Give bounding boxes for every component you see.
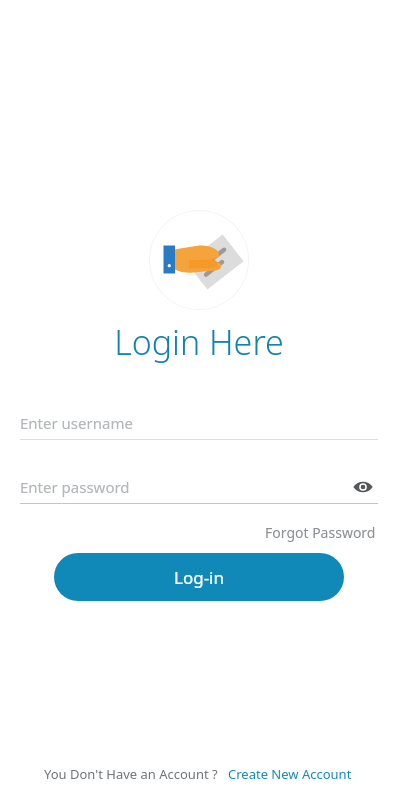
staticText: Enter password [20, 477, 348, 497]
button[interactable]: Enter password [20, 470, 378, 504]
staticText: Log-in [174, 566, 225, 589]
staticText: Forgot Password [265, 523, 376, 542]
staticText: Create New Account [228, 765, 352, 783]
staticText: Enter username [20, 413, 133, 433]
button[interactable]: Create New Account [226, 763, 354, 785]
button[interactable]: Forgot Password [263, 521, 378, 544]
button[interactable]: Log-in [54, 553, 344, 601]
staticText: You Don't Have an Account ? [44, 765, 218, 783]
button[interactable]: Show password [348, 472, 378, 502]
staticText: Login Here [0, 319, 398, 365]
button[interactable]: Enter username [20, 406, 378, 440]
